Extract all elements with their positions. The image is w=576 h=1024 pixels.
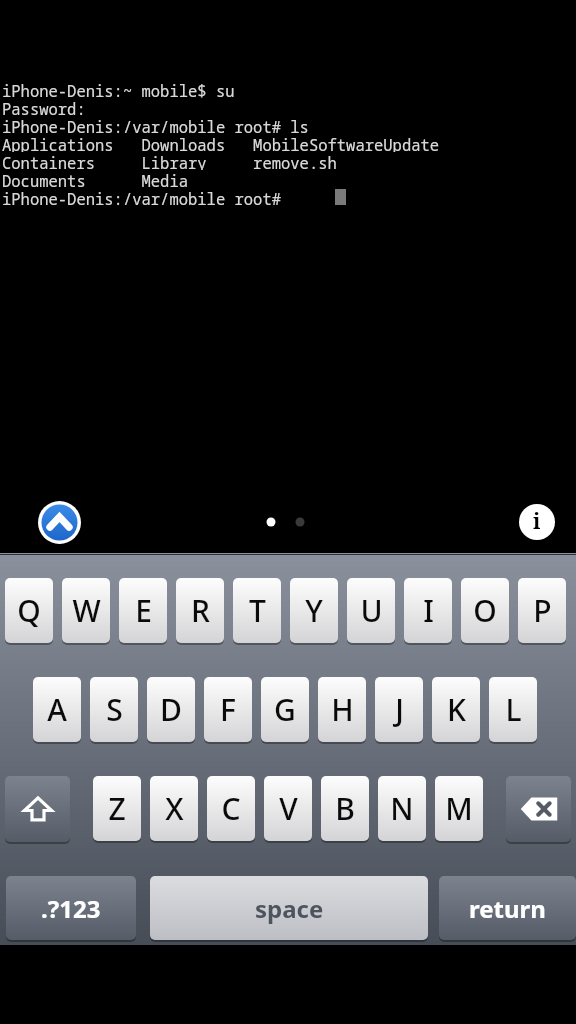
button[interactable]: Backspace xyxy=(506,776,571,842)
staticText: O xyxy=(473,590,497,631)
button[interactable]: F xyxy=(204,677,252,742)
staticText: P xyxy=(533,590,552,631)
button[interactable]: B xyxy=(321,776,369,841)
staticText: N xyxy=(390,788,414,829)
button[interactable]: space xyxy=(150,876,428,940)
button[interactable]: K xyxy=(432,677,480,742)
staticText: Applications Downloads MobileSoftwareUpd… xyxy=(2,134,440,152)
staticText: return xyxy=(469,892,546,925)
staticText: iPhone-Denis:/var/mobile root# xyxy=(2,188,291,206)
button[interactable]: O xyxy=(461,578,509,643)
button[interactable]: I xyxy=(404,578,452,643)
staticText: iPhone-Denis:~ mobile$ su xyxy=(2,80,235,98)
button[interactable]: .?123 xyxy=(6,876,136,940)
staticText: Y xyxy=(305,590,323,631)
staticText: X xyxy=(165,788,184,829)
button[interactable]: E xyxy=(119,578,167,643)
button[interactable]: L xyxy=(489,677,537,742)
staticText: T xyxy=(249,590,266,631)
button[interactable]: return xyxy=(439,876,576,940)
button[interactable]: W xyxy=(62,578,110,643)
staticText: H xyxy=(331,689,354,730)
staticText: E xyxy=(135,590,152,631)
staticText: i xyxy=(533,507,541,536)
button[interactable]: Z xyxy=(93,776,141,841)
button[interactable]: N xyxy=(378,776,426,841)
button[interactable]: S xyxy=(90,677,138,742)
staticText: R xyxy=(191,590,210,631)
button[interactable]: M xyxy=(435,776,483,841)
staticText: B xyxy=(335,788,355,829)
staticText: U xyxy=(360,590,383,631)
button[interactable]: D xyxy=(147,677,195,742)
staticText: G xyxy=(274,689,296,730)
staticText: Containers Library remove.sh xyxy=(2,152,337,170)
button[interactable]: P xyxy=(518,578,566,643)
staticText: D xyxy=(160,689,182,730)
staticText: F xyxy=(220,689,236,730)
button[interactable]: X xyxy=(150,776,198,841)
button[interactable]: G xyxy=(261,677,309,742)
staticText: M xyxy=(445,788,473,829)
staticText: S xyxy=(106,689,123,730)
button[interactable]: C xyxy=(207,776,255,841)
staticText: I xyxy=(423,590,434,631)
button[interactable]: Q xyxy=(5,578,53,643)
staticText: C xyxy=(221,788,241,829)
button[interactable]: U xyxy=(347,578,395,643)
button[interactable]: V xyxy=(264,776,312,841)
button[interactable]: J xyxy=(375,677,423,742)
staticText: space xyxy=(255,892,324,925)
button[interactable]: Y xyxy=(290,578,338,643)
button[interactable]: R xyxy=(176,578,224,643)
staticText: W xyxy=(72,590,101,631)
staticText: Password: xyxy=(2,98,86,116)
staticText: J xyxy=(395,689,404,730)
button[interactable]: A xyxy=(33,677,81,742)
staticText: A xyxy=(47,689,67,730)
staticText: Q xyxy=(17,590,41,631)
button[interactable]: Shift xyxy=(5,776,70,842)
staticText: V xyxy=(279,788,298,829)
button[interactable]: Show more keys xyxy=(38,501,81,544)
staticText: .?123 xyxy=(41,892,101,925)
staticText: Documents Media xyxy=(2,170,189,188)
button[interactable]: H xyxy=(318,677,366,742)
button[interactable]: Info xyxy=(519,504,555,540)
staticText: K xyxy=(447,689,466,730)
button[interactable]: T xyxy=(233,578,281,643)
staticText: Z xyxy=(108,788,126,829)
staticText: L xyxy=(505,689,522,730)
staticText: iPhone-Denis:/var/mobile root# ls xyxy=(2,116,309,134)
